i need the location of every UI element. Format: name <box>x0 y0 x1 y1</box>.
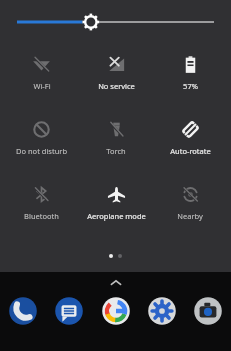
staticText: Do not disturb <box>16 146 67 156</box>
button[interactable]: Phone <box>8 296 38 326</box>
button[interactable]: Auto-rotate <box>153 116 227 160</box>
staticText: Nearby <box>177 211 203 221</box>
button[interactable]: Brightness <box>0 0 231 44</box>
button[interactable]: Wi-Fi <box>4 51 79 95</box>
staticText: Aeroplane mode <box>87 211 146 221</box>
button[interactable]: Torch <box>79 116 153 160</box>
staticText: No service <box>98 81 135 91</box>
button[interactable]: Camera <box>193 296 223 326</box>
button[interactable]: Settings <box>147 296 177 326</box>
button[interactable]: Bluetooth <box>4 181 79 225</box>
button[interactable]: Nearby <box>153 181 227 225</box>
staticText: Wi-Fi <box>33 81 51 91</box>
staticText: Torch <box>106 146 126 156</box>
staticText: 57% <box>183 81 198 91</box>
button[interactable]: 57% <box>153 51 227 95</box>
button[interactable]: Google <box>101 296 131 326</box>
button[interactable]: Aeroplane mode <box>79 181 153 225</box>
button[interactable]: Do not disturb <box>4 116 79 160</box>
staticText: Auto-rotate <box>170 146 211 156</box>
button[interactable]: No service <box>79 51 153 95</box>
button[interactable]: Messages <box>54 296 84 326</box>
staticText: Bluetooth <box>24 211 59 221</box>
button[interactable]: All apps <box>104 276 128 288</box>
